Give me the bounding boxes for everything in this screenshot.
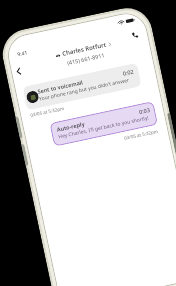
other: Power button <box>167 113 176 157</box>
staticText: Auto-reply <box>56 120 86 133</box>
staticText: 9:41 <box>17 49 28 58</box>
staticText: Your phone rang but you didn't answer <box>38 77 130 103</box>
staticText: 03/05 at 5:32pm <box>123 128 159 141</box>
staticText: Hey Charles, I'll get back to you shortl… <box>58 114 150 140</box>
button[interactable]: Charles Rotfurt <box>55 40 114 68</box>
button[interactable]: Back <box>11 63 27 80</box>
button[interactable]: Sent to voicemail <box>22 63 142 110</box>
button[interactable]: Call <box>127 27 143 44</box>
staticText: Charles Rotfurt <box>61 41 107 58</box>
staticText: 0:02 <box>122 68 134 77</box>
button[interactable]: Auto-reply <box>49 101 158 147</box>
staticText: (415) 661-8911 <box>66 51 105 66</box>
staticText: Sent to voicemail <box>37 78 84 95</box>
staticText: 03/05 at 5:32pm <box>30 105 65 118</box>
staticText: 0:03 <box>138 106 150 115</box>
